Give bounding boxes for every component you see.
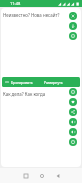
staticText: Неизвестно? Нова несайт? bbox=[3, 12, 60, 18]
button[interactable]: Home bbox=[37, 171, 46, 180]
button[interactable]: Бронировать bbox=[2, 77, 80, 87]
button[interactable]: Close bbox=[69, 12, 77, 20]
button[interactable]: Camera bbox=[69, 32, 77, 40]
button[interactable]: Like bbox=[69, 98, 77, 106]
button[interactable]: Emoji bbox=[69, 138, 77, 146]
button[interactable]: Recents bbox=[21, 171, 30, 180]
staticText: Как дела? Как когда bbox=[3, 91, 46, 97]
button[interactable]: Share bbox=[69, 108, 77, 116]
button[interactable]: Download bbox=[69, 22, 77, 30]
button[interactable]: Back bbox=[53, 171, 62, 180]
button[interactable]: Volume bbox=[69, 118, 77, 126]
staticText: Бронировать bbox=[11, 80, 33, 85]
staticText: 11:48 bbox=[10, 1, 21, 6]
button[interactable]: Camera bbox=[69, 88, 77, 96]
staticText: Развернуть bbox=[44, 80, 63, 85]
button[interactable]: Mute bbox=[69, 128, 77, 136]
